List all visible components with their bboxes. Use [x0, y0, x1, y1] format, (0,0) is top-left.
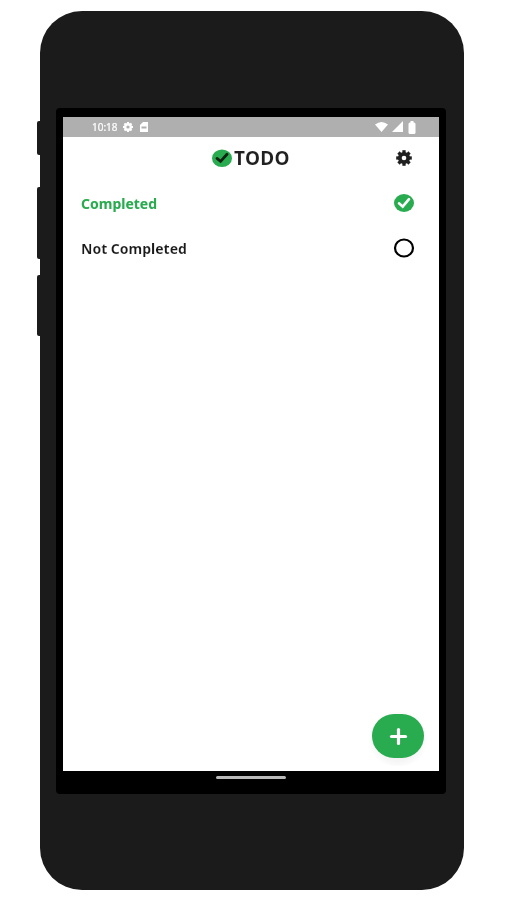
button[interactable]: [388, 142, 420, 174]
staticText: Not Completed: [81, 239, 187, 258]
staticText: 10:18: [92, 120, 118, 134]
staticText: Completed: [81, 194, 158, 213]
button[interactable]: Completed: [63, 183, 439, 223]
button[interactable]: Not Completed: [63, 228, 439, 268]
button[interactable]: [372, 714, 424, 758]
staticText: TODO: [234, 145, 290, 171]
